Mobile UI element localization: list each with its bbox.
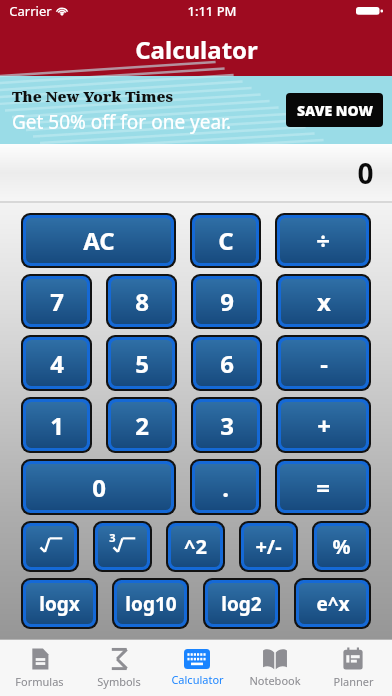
staticText: = [316, 471, 330, 504]
button[interactable]: log2 [208, 583, 275, 624]
button[interactable]: AC [26, 218, 171, 263]
button[interactable]: + [281, 402, 366, 448]
staticText: Calculator [135, 33, 258, 66]
button[interactable]: ^2 [171, 526, 220, 567]
button[interactable]: logx [26, 583, 93, 624]
button[interactable]: Equals [280, 464, 366, 510]
staticText: The New York Times [12, 86, 173, 106]
staticText: C [218, 224, 234, 257]
staticText: log10 [125, 591, 177, 617]
staticText: 0 [357, 154, 374, 192]
button[interactable]: . [195, 464, 256, 510]
staticText: 3 [109, 530, 116, 545]
button[interactable]: Formulas [0, 640, 79, 696]
staticText: logx [39, 591, 80, 617]
button[interactable]: Notebook [236, 640, 314, 696]
staticText: Planner [333, 674, 374, 689]
staticText: 7 [50, 285, 64, 318]
staticText: Symbols [97, 674, 141, 689]
staticText: 1 [50, 409, 64, 442]
button[interactable]: Square root [26, 526, 74, 567]
button[interactable]: log10 [117, 583, 184, 624]
staticText: Notebook [249, 673, 301, 688]
button[interactable]: Symbols [79, 640, 158, 696]
staticText: ÷ [316, 224, 330, 257]
staticText: 1:11 PM [187, 2, 237, 20]
staticText: Get 50% off for one year. [12, 109, 231, 135]
button[interactable]: 6 [196, 340, 257, 386]
button[interactable]: 1 [26, 402, 87, 448]
staticText: 5 [135, 347, 149, 380]
button[interactable]: 0 [26, 464, 171, 510]
button[interactable]: C [195, 218, 256, 263]
staticText: - [320, 347, 328, 380]
button[interactable]: Divide [280, 218, 366, 263]
button[interactable]: 7 [26, 279, 87, 324]
staticText: SAVE NOW [297, 101, 373, 120]
staticText: Carrier [9, 2, 52, 20]
staticText: 0 [92, 471, 106, 504]
staticText: x [317, 285, 331, 318]
staticText: ^2 [184, 533, 207, 560]
staticText: AC [83, 224, 115, 257]
button[interactable]: 8 [111, 279, 172, 324]
staticText: e^x [316, 591, 350, 617]
staticText: 8 [135, 285, 149, 318]
button[interactable]: Calculator [158, 640, 236, 696]
button[interactable]: - [281, 340, 366, 386]
button[interactable]: 9 [196, 279, 257, 324]
staticText: . [222, 471, 229, 504]
button[interactable]: 3 [196, 402, 257, 448]
staticText: +/- [255, 533, 282, 560]
staticText: 3 [220, 409, 234, 442]
staticText: 2 [135, 409, 149, 442]
staticText: Formulas [15, 674, 64, 689]
button[interactable]: x [281, 279, 366, 324]
staticText: log2 [221, 591, 262, 617]
staticText: 9 [220, 285, 234, 318]
button[interactable]: Planner [314, 640, 392, 696]
staticText: Calculator [171, 672, 224, 687]
button[interactable]: % [317, 526, 366, 567]
button[interactable]: e^x [299, 583, 366, 624]
staticText: 6 [220, 347, 234, 380]
button[interactable]: Cube root [98, 526, 147, 567]
staticText: 4 [50, 347, 64, 380]
button[interactable]: 5 [111, 340, 172, 386]
staticText: % [332, 533, 351, 560]
button[interactable]: 2 [111, 402, 172, 448]
button[interactable]: +/- [244, 526, 293, 567]
button[interactable]: SAVE NOW [286, 93, 383, 127]
button[interactable]: 4 [26, 340, 87, 386]
staticText: + [317, 409, 331, 442]
